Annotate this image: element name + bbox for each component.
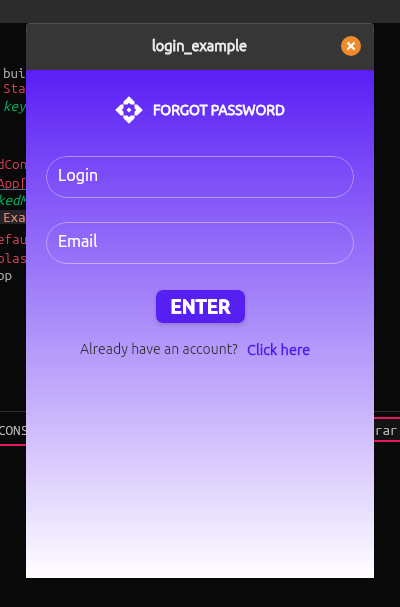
staticText: Already have an account? — [80, 341, 238, 357]
staticText: buil — [3, 65, 34, 80]
button[interactable]: Click here — [247, 341, 311, 357]
staticText: ENTER — [171, 296, 231, 316]
staticText: pp — [0, 267, 13, 282]
staticText: rar ( — [375, 422, 400, 437]
staticText: dCon — [0, 156, 28, 171]
staticText: login_example — [152, 37, 248, 53]
button[interactable]: Email — [46, 222, 354, 264]
staticText: Sta — [3, 80, 26, 95]
staticText: App[ — [0, 175, 28, 190]
staticText: ENTER — [171, 296, 231, 316]
button[interactable]: Close — [341, 36, 361, 56]
staticText: kedM — [0, 192, 28, 207]
staticText: efau — [0, 231, 28, 246]
staticText: key — [3, 98, 26, 113]
button[interactable]: Login — [46, 156, 354, 198]
staticText: olas — [0, 250, 28, 265]
staticText: Login — [58, 166, 99, 184]
button[interactable]: ENTER — [156, 290, 245, 323]
staticText: Email — [58, 232, 98, 250]
staticText: Exa — [3, 209, 26, 224]
staticText: CONS — [0, 422, 29, 437]
staticText: FORGOT PASSWORD — [153, 102, 285, 118]
